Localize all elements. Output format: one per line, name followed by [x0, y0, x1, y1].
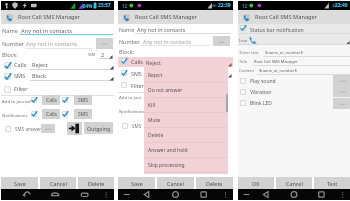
staticText: Block: [2, 51, 18, 59]
button[interactable]: Any not in contacts [135, 24, 231, 34]
staticText: SMS [14, 72, 26, 80]
button[interactable] [5, 126, 11, 132]
button[interactable]: Test [314, 177, 350, 189]
button[interactable]: $name_or_number$ [257, 66, 350, 75]
button[interactable] [4, 73, 11, 80]
staticText: Number [119, 38, 141, 45]
button[interactable] [62, 97, 68, 103]
staticText: Reject [32, 61, 48, 68]
staticText: Test [327, 180, 338, 187]
button[interactable] [121, 70, 127, 76]
button[interactable]: Calls [42, 109, 60, 119]
staticText: Any not in contacts [26, 40, 77, 48]
button[interactable] [240, 100, 246, 106]
staticText: Notifications [2, 112, 28, 118]
button[interactable]: Cancel [157, 177, 194, 189]
button[interactable]: Save [118, 177, 155, 189]
button[interactable]: Answer and hold [144, 143, 228, 158]
button[interactable]: Root Call SMS Manager [252, 57, 350, 66]
button[interactable] [31, 111, 37, 117]
staticText: Play sound [250, 78, 276, 85]
button[interactable]: Reject [144, 68, 228, 83]
staticText: OK [252, 180, 260, 187]
button[interactable] [121, 82, 127, 88]
staticText: Block: [119, 48, 135, 55]
button[interactable] [62, 111, 68, 117]
staticText: Blink LED [250, 100, 272, 107]
button[interactable]: More [213, 36, 230, 46]
button[interactable]: More [41, 124, 55, 133]
button[interactable]: Do not answer [144, 83, 228, 98]
staticText: Ticker text [239, 50, 259, 55]
staticText: Any not in contacts [143, 38, 192, 45]
other: App icon [5, 13, 14, 22]
button[interactable]: 2 [100, 50, 113, 59]
staticText: Do not answer [148, 87, 183, 94]
button[interactable]: Reject [144, 57, 232, 67]
staticText: Filter [131, 82, 144, 89]
staticText: SIM [88, 52, 95, 57]
button[interactable]: Outgoing [84, 122, 113, 134]
staticText: Notifications [119, 108, 145, 114]
button[interactable] [4, 62, 11, 69]
button[interactable]: Delete [78, 177, 114, 189]
button[interactable] [121, 59, 127, 65]
staticText: Calls [46, 111, 57, 118]
button[interactable] [4, 86, 11, 93]
button[interactable]: More [96, 38, 113, 49]
staticText: Save [131, 180, 143, 187]
button[interactable]: Save [1, 177, 38, 189]
button[interactable]: Block [30, 70, 114, 81]
button[interactable]: Delete [196, 177, 233, 189]
button[interactable]: Icon picker [248, 34, 350, 45]
staticText: Number [2, 40, 25, 48]
staticText: Delete [206, 180, 223, 187]
button[interactable] [121, 58, 127, 64]
button[interactable]: Calls [42, 95, 60, 105]
button[interactable]: Direction [67, 122, 82, 135]
button[interactable]: More [333, 75, 350, 86]
staticText: SMS [132, 123, 142, 129]
staticText: Content [239, 68, 255, 73]
staticText: $name_or_number$ [259, 68, 297, 73]
button[interactable]: Cancel [276, 177, 312, 189]
button[interactable] [240, 78, 246, 84]
button[interactable]: Kill [144, 98, 228, 113]
staticText: Title [239, 59, 247, 64]
staticText: Mute [148, 117, 161, 124]
staticText: Root Call SMS Manager [255, 13, 318, 21]
staticText: 23:57 [98, 2, 111, 9]
button[interactable] [122, 123, 128, 129]
other: App icon [242, 13, 251, 22]
staticText: 2 [101, 51, 105, 59]
button[interactable]: Skip processing [144, 158, 228, 173]
button[interactable]: Delete [144, 128, 228, 143]
staticText: Cancel [50, 180, 67, 187]
button[interactable]: Cancel [40, 177, 76, 189]
staticText: 64% [83, 3, 93, 9]
staticText: Kill [148, 102, 155, 109]
button[interactable]: Reject [30, 59, 114, 70]
button[interactable]: Any not in contacts [25, 38, 92, 49]
button[interactable]: Mute [144, 113, 228, 128]
button[interactable] [240, 89, 246, 95]
staticText: Name [2, 27, 19, 35]
button[interactable]: More [333, 86, 350, 97]
staticText: Calls [131, 58, 143, 65]
staticText: Status bar notification [250, 26, 304, 33]
staticText: Icon [239, 38, 248, 44]
button[interactable]: More [333, 98, 350, 109]
staticText: Calls [46, 97, 57, 104]
button[interactable]: SMS [74, 109, 92, 119]
button[interactable]: $name_or_number$ [263, 48, 350, 57]
button[interactable]: Any not in contacts [20, 25, 113, 35]
button[interactable] [240, 25, 246, 31]
staticText: 12 [122, 3, 128, 9]
staticText: 22:40 [335, 2, 348, 9]
button[interactable]: Any not in contacts [141, 36, 210, 46]
staticText: Root Call SMS Manager [18, 13, 81, 21]
button[interactable]: SMS [74, 95, 92, 105]
staticText: Answer and hold [148, 147, 188, 154]
button[interactable] [31, 97, 37, 103]
button[interactable]: OK [238, 177, 274, 189]
